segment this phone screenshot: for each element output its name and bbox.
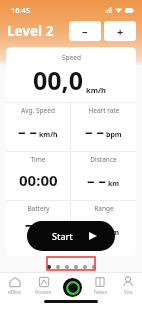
staticText: Heart rate [88, 106, 120, 115]
staticText: Start [52, 230, 73, 242]
staticText: Range [94, 204, 114, 213]
staticText: – – [18, 121, 37, 141]
staticText: You [124, 289, 133, 296]
staticText: eBike [8, 289, 21, 296]
staticText: 16:45 [11, 5, 31, 15]
staticText: 00,0 [33, 63, 84, 97]
button[interactable]: Increase assist level [104, 21, 136, 41]
button[interactable]: You [114, 272, 142, 300]
button[interactable]: eBike [0, 272, 29, 300]
button[interactable]: News [86, 272, 114, 300]
staticText: km/h [39, 130, 58, 140]
staticText: Avg. Speed [21, 106, 55, 115]
staticText: Speed [62, 53, 81, 62]
button[interactable]: Record ride [63, 278, 82, 297]
staticText: – [82, 24, 88, 39]
staticText: + [117, 24, 124, 39]
button[interactable]: Start [27, 221, 115, 251]
staticText: – – [87, 219, 106, 239]
staticText: Battery [27, 204, 50, 213]
staticText: 00:00 [19, 170, 58, 190]
staticText: Time [30, 155, 46, 164]
staticText: News [94, 289, 107, 296]
staticText: km [108, 179, 120, 189]
button[interactable]: Routes [29, 272, 58, 300]
staticText: Routes [35, 289, 52, 296]
button[interactable]: Decrease assist level [69, 21, 101, 41]
staticText: bpm [106, 130, 122, 140]
staticText: 76 [25, 219, 43, 239]
staticText: km [108, 228, 120, 238]
staticText: km/h [86, 85, 106, 95]
staticText: – – [85, 121, 104, 141]
staticText: – – [87, 170, 106, 190]
staticText: Level 2 [7, 22, 54, 40]
staticText: Distance [90, 155, 117, 164]
